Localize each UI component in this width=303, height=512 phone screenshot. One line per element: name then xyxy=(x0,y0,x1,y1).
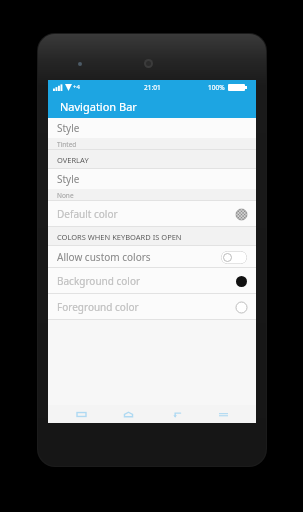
staticText: +4 xyxy=(73,83,80,91)
staticText: Style xyxy=(57,121,80,135)
staticText: Default color xyxy=(57,207,118,221)
button[interactable]: Style xyxy=(48,118,256,150)
button[interactable]: Recents xyxy=(66,405,96,423)
staticText: Style xyxy=(57,172,80,186)
staticText: Tinted xyxy=(57,140,77,149)
button[interactable]: Foreground color xyxy=(48,294,256,320)
staticText: 21:01 xyxy=(144,83,161,92)
button[interactable]: Allow custom colors xyxy=(48,246,256,268)
staticText: Background color xyxy=(57,274,141,288)
staticText: None xyxy=(57,191,74,200)
staticText: COLORS WHEN KEYBOARD IS OPEN xyxy=(57,232,182,242)
staticText: OVERLAY xyxy=(57,155,89,165)
button[interactable]: Style xyxy=(48,169,256,201)
staticText: Navigation Bar xyxy=(60,99,137,114)
button[interactable]: Background color xyxy=(48,268,256,294)
staticText: 100% xyxy=(208,83,225,92)
other: Allow custom colors toggle xyxy=(221,251,247,264)
staticText: Allow custom colors xyxy=(57,250,151,264)
button[interactable]: Default color xyxy=(48,201,256,227)
button[interactable]: Back xyxy=(161,405,191,423)
staticText: Foreground color xyxy=(57,300,139,314)
button[interactable]: Menu xyxy=(208,405,238,423)
button[interactable]: Home xyxy=(113,405,143,423)
